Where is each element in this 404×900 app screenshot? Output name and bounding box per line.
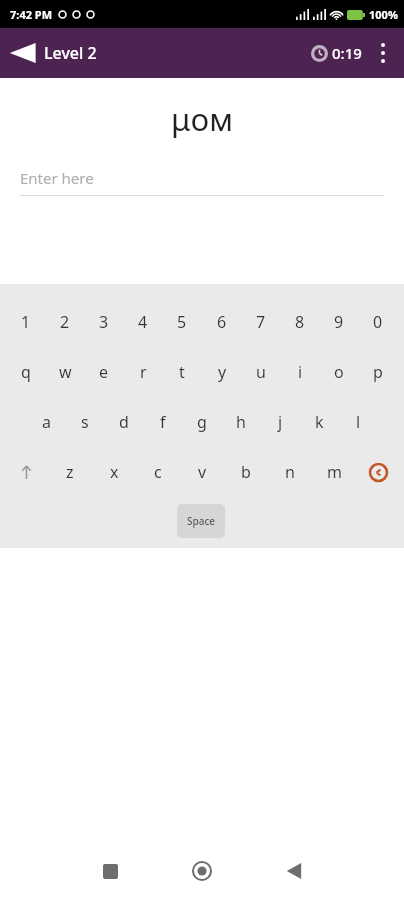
button[interactable]: r: [129, 356, 157, 388]
button[interactable]: u: [247, 356, 275, 388]
staticText: a: [42, 411, 51, 433]
button[interactable]: m: [320, 456, 348, 488]
button[interactable]: e: [90, 356, 118, 388]
button[interactable]: c: [144, 456, 172, 488]
staticText: p: [373, 361, 383, 383]
staticText: 100%: [369, 7, 398, 22]
staticText: w: [59, 361, 72, 383]
button[interactable]: q: [12, 356, 40, 388]
button[interactable]: h: [227, 406, 255, 438]
staticText: t: [179, 361, 185, 383]
staticText: 2: [60, 311, 70, 333]
button[interactable]: Enter here: [20, 168, 384, 196]
staticText: n: [285, 461, 295, 483]
staticText: Level 2: [44, 42, 97, 64]
staticText: e: [99, 361, 109, 383]
staticText: z: [66, 461, 74, 483]
button[interactable]: p: [364, 356, 392, 388]
button[interactable]: 9: [325, 306, 353, 338]
staticText: f: [160, 411, 166, 433]
button[interactable]: Back: [248, 842, 340, 900]
staticText: 9: [334, 311, 344, 333]
button[interactable]: 2: [51, 306, 79, 338]
staticText: 7:42 PM: [10, 7, 53, 22]
button[interactable]: d: [110, 406, 138, 438]
staticText: v: [198, 461, 207, 483]
button[interactable]: 0: [364, 306, 392, 338]
button[interactable]: Space: [177, 504, 225, 538]
staticText: 7: [256, 311, 266, 333]
staticText: μoм: [171, 98, 233, 140]
button[interactable]: 4: [129, 306, 157, 338]
button[interactable]: 5: [168, 306, 196, 338]
staticText: o: [334, 361, 344, 383]
staticText: 6: [217, 311, 227, 333]
button[interactable]: w: [51, 356, 79, 388]
staticText: b: [241, 461, 251, 483]
staticText: 5: [177, 311, 187, 333]
button[interactable]: z: [56, 456, 84, 488]
staticText: r: [140, 361, 147, 383]
staticText: x: [110, 461, 119, 483]
button[interactable]: y: [208, 356, 236, 388]
button[interactable]: 7: [247, 306, 275, 338]
staticText: g: [197, 411, 207, 433]
staticText: i: [298, 361, 303, 383]
button[interactable]: Recents: [64, 842, 156, 900]
staticText: 1: [21, 311, 31, 333]
staticText: j: [278, 411, 283, 433]
button[interactable]: Back to Level 2: [0, 36, 109, 70]
button[interactable]: 3: [90, 306, 118, 338]
button[interactable]: a: [32, 406, 60, 438]
staticText: 0: [373, 311, 383, 333]
staticText: u: [256, 361, 266, 383]
staticText: y: [218, 361, 227, 383]
staticText: 0:19: [332, 43, 362, 63]
button[interactable]: t: [168, 356, 196, 388]
button[interactable]: 8: [286, 306, 314, 338]
button[interactable]: 1: [12, 306, 40, 338]
staticText: q: [21, 361, 31, 383]
button[interactable]: Home: [156, 842, 248, 900]
button[interactable]: l: [344, 406, 372, 438]
button[interactable]: g: [188, 406, 216, 438]
button[interactable]: j: [266, 406, 294, 438]
button[interactable]: 6: [208, 306, 236, 338]
button[interactable]: x: [100, 456, 128, 488]
button[interactable]: k: [305, 406, 333, 438]
button[interactable]: Shift: [12, 456, 40, 488]
staticText: d: [119, 411, 129, 433]
button[interactable]: s: [71, 406, 99, 438]
staticText: 3: [99, 311, 109, 333]
button[interactable]: i: [286, 356, 314, 388]
staticText: 8: [295, 311, 305, 333]
staticText: h: [236, 411, 246, 433]
staticText: Enter here: [20, 168, 94, 188]
button[interactable]: b: [232, 456, 260, 488]
button[interactable]: f: [149, 406, 177, 438]
staticText: Space: [187, 514, 216, 528]
staticText: s: [81, 411, 89, 433]
button[interactable]: Backspace: [364, 456, 392, 488]
button[interactable]: v: [188, 456, 216, 488]
button[interactable]: More options: [366, 28, 400, 78]
staticText: k: [315, 411, 324, 433]
staticText: l: [356, 411, 361, 433]
staticText: m: [327, 461, 342, 483]
button[interactable]: 0:19: [307, 37, 366, 69]
button[interactable]: o: [325, 356, 353, 388]
button[interactable]: n: [276, 456, 304, 488]
staticText: 4: [138, 311, 148, 333]
staticText: c: [154, 461, 162, 483]
